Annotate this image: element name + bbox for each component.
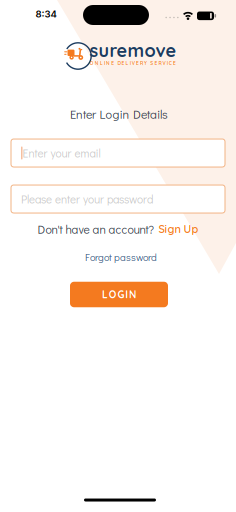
staticText: Please enter your password bbox=[21, 191, 153, 206]
staticText: 8:34 bbox=[35, 8, 56, 20]
button[interactable]: Enter your email bbox=[11, 139, 225, 167]
staticText: Login bbox=[99, 106, 129, 122]
staticText: ONLINE DELIVERY SERVICE bbox=[90, 60, 176, 66]
staticText: Forgot password bbox=[85, 250, 157, 264]
button[interactable]: LOGIN bbox=[70, 282, 168, 307]
staticText: Enter your email bbox=[22, 145, 100, 160]
staticText: Enter bbox=[70, 106, 96, 122]
button[interactable]: Sign Up bbox=[158, 222, 198, 236]
staticText: Don't have an account? bbox=[37, 221, 154, 237]
staticText: suremove bbox=[89, 39, 176, 61]
staticText: LOGIN bbox=[102, 288, 136, 301]
staticText: Details bbox=[133, 106, 168, 122]
button[interactable]: Please enter your password bbox=[11, 185, 225, 213]
button[interactable]: Forgot password bbox=[85, 250, 157, 264]
staticText: Sign Up bbox=[158, 222, 198, 236]
